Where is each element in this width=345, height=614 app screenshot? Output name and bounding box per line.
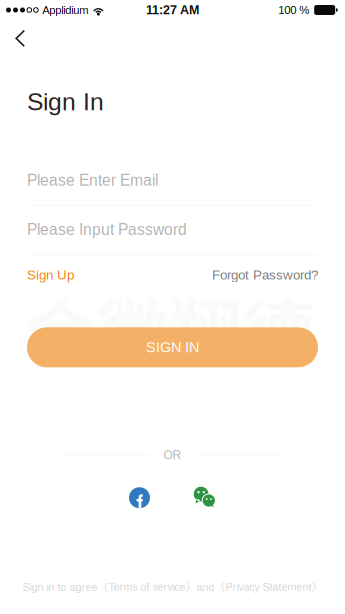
staticText: Sign Up bbox=[27, 267, 74, 282]
button[interactable]: Sign Up bbox=[27, 264, 74, 285]
staticText: 100 % bbox=[278, 4, 309, 16]
staticText: 合徽翔德 bbox=[23, 276, 315, 382]
button[interactable]: Forgot Password? bbox=[212, 264, 318, 285]
staticText: OR bbox=[163, 448, 181, 462]
staticText: Sign in to agree bbox=[22, 581, 97, 593]
staticText: and bbox=[196, 581, 214, 593]
staticText: 《Terms of service》 bbox=[97, 581, 196, 594]
button[interactable]: Sign in with WeChat bbox=[193, 487, 216, 509]
staticText: Sign In bbox=[27, 88, 104, 116]
button[interactable]: Back bbox=[0, 25, 41, 52]
staticText: Please Input Password bbox=[27, 221, 187, 238]
staticText: 11:27 AM bbox=[146, 3, 199, 17]
staticText: 《Privacy Statement》 bbox=[214, 581, 322, 594]
staticText: Please Enter Email bbox=[27, 172, 158, 189]
button[interactable]: Sign in with Facebook bbox=[128, 487, 150, 509]
staticText: SIGN IN bbox=[146, 339, 199, 355]
button[interactable]: 《Terms of service》 bbox=[97, 581, 196, 594]
button[interactable]: 《Privacy Statement》 bbox=[214, 581, 322, 594]
button[interactable]: SIGN IN bbox=[27, 327, 318, 367]
staticText: Applidium bbox=[42, 4, 88, 16]
staticText: Forgot Password? bbox=[212, 267, 318, 282]
